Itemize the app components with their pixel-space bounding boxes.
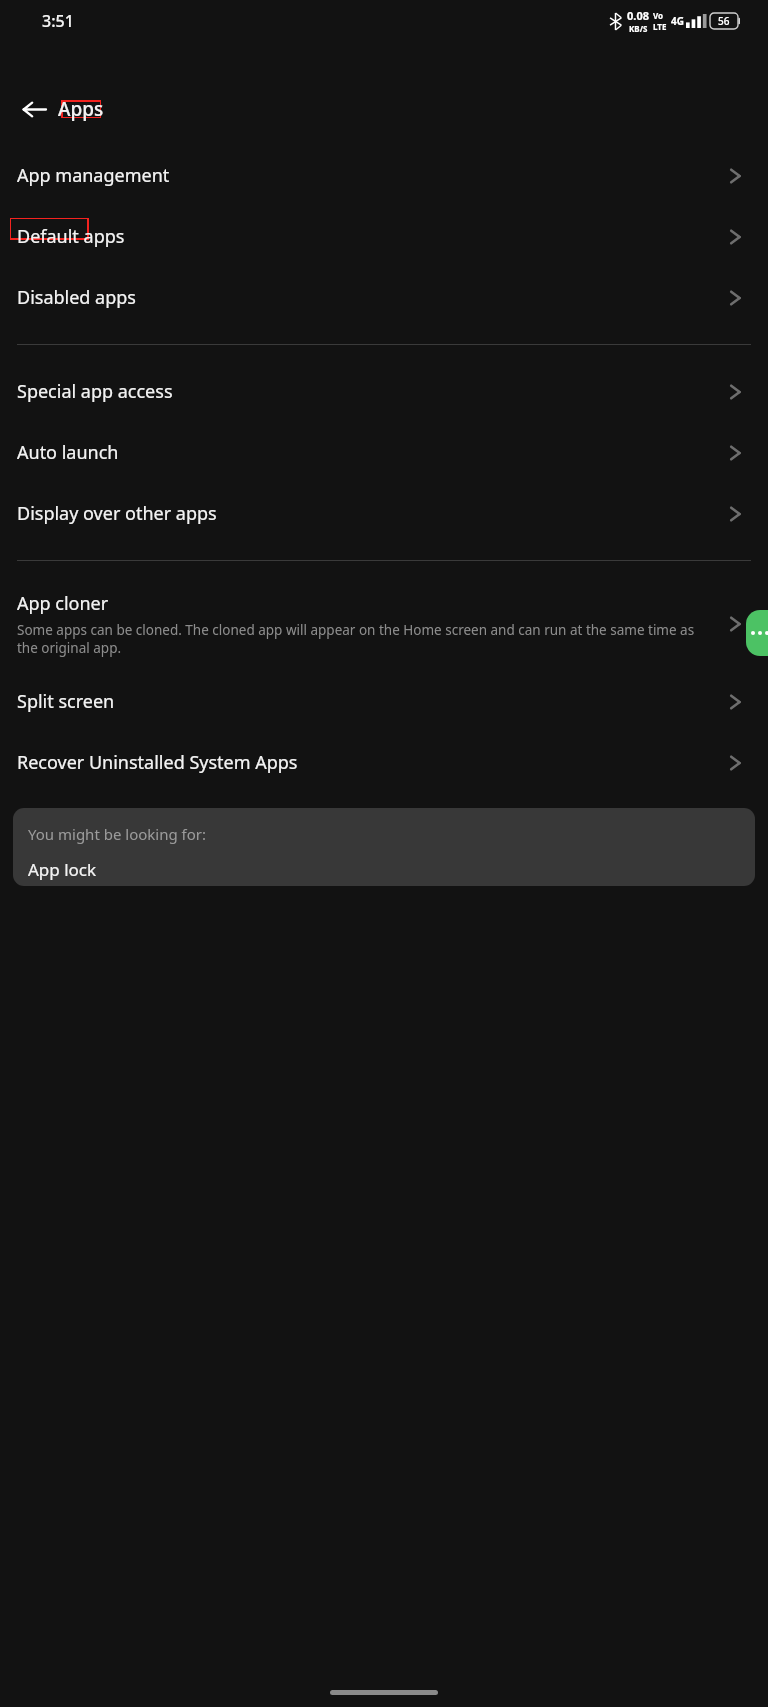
- staticText: 3:51: [42, 10, 74, 32]
- button[interactable]: Assistant: [746, 610, 768, 656]
- button[interactable]: Default apps: [0, 214, 768, 259]
- staticText: Vo: [653, 10, 664, 21]
- staticText: App lock: [28, 858, 97, 881]
- button[interactable]: You might be looking for:: [13, 808, 755, 886]
- staticText: Auto launch: [17, 440, 119, 465]
- staticText: Disabled apps: [17, 285, 136, 310]
- staticText: 4G: [671, 14, 684, 28]
- staticText: Special app access: [17, 379, 173, 404]
- staticText: Split screen: [17, 689, 115, 714]
- staticText: App cloner: [17, 591, 109, 616]
- button[interactable]: Split screen: [0, 679, 768, 724]
- button[interactable]: Back: [12, 87, 56, 131]
- staticText: Recover Uninstalled System Apps: [17, 750, 298, 775]
- staticText: App management: [17, 163, 170, 188]
- button[interactable]: Special app access: [0, 369, 768, 414]
- button[interactable]: Disabled apps: [0, 275, 768, 320]
- staticText: 0.08: [627, 8, 649, 23]
- button[interactable]: Display over other apps: [0, 491, 768, 536]
- staticText: KB/S: [629, 23, 648, 34]
- button[interactable]: App management: [0, 153, 768, 198]
- staticText: Default apps: [17, 224, 125, 249]
- button[interactable]: Recover Uninstalled System Apps: [0, 740, 768, 785]
- staticText: LTE: [653, 21, 667, 32]
- button[interactable]: Auto launch: [0, 430, 768, 475]
- staticText: Some apps can be cloned. The cloned app …: [17, 621, 715, 657]
- staticText: Display over other apps: [17, 501, 217, 526]
- button[interactable]: App cloner: [0, 581, 768, 667]
- staticText: 56: [718, 14, 730, 28]
- staticText: Apps: [58, 96, 104, 122]
- staticText: You might be looking for:: [28, 824, 207, 844]
